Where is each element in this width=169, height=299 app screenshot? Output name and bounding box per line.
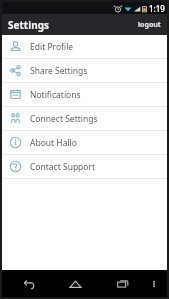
button[interactable]: Recent apps xyxy=(111,272,135,296)
button[interactable]: More options xyxy=(145,275,163,293)
staticText: Share Settings xyxy=(30,65,88,77)
button[interactable]: Contact Support xyxy=(2,155,167,178)
button[interactable]: Home xyxy=(63,272,87,296)
button[interactable]: Notifications xyxy=(2,83,167,106)
button[interactable]: Edit Profile xyxy=(2,35,167,58)
staticText: logout xyxy=(138,20,161,30)
staticText: About Hallo xyxy=(30,137,77,149)
button[interactable]: Share Settings xyxy=(2,59,167,82)
staticText: Edit Profile xyxy=(30,41,74,53)
button[interactable]: Connect Settings xyxy=(2,107,167,130)
button[interactable]: logout xyxy=(132,16,167,34)
button[interactable]: Back xyxy=(16,272,40,296)
button[interactable]: About Hallo xyxy=(2,131,167,154)
staticText: 1:19 xyxy=(149,3,165,14)
staticText: Connect Settings xyxy=(30,113,98,125)
staticText: Settings xyxy=(8,18,49,32)
staticText: Notifications xyxy=(30,89,81,101)
staticText: Contact Support xyxy=(30,161,96,173)
